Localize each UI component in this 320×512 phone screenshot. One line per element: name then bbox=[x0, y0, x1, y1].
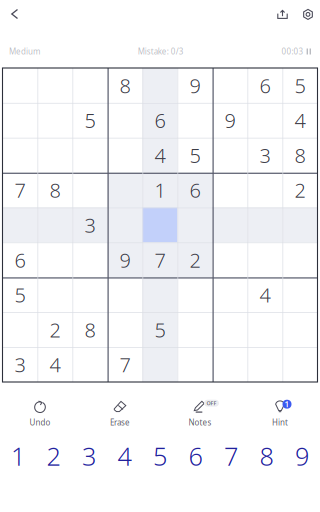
staticText: 5 bbox=[153, 439, 167, 473]
staticText: 1 bbox=[11, 439, 25, 473]
button[interactable]: Share bbox=[270, 0, 295, 28]
button[interactable]: 6 bbox=[178, 441, 213, 471]
staticText: 8 bbox=[294, 142, 305, 168]
staticText: 1 bbox=[284, 399, 289, 409]
button[interactable]: Settings bbox=[295, 0, 320, 28]
staticText: 4 bbox=[49, 351, 60, 378]
button[interactable]: Undo bbox=[0, 397, 80, 431]
staticText: 2 bbox=[189, 247, 200, 273]
staticText: 1 bbox=[154, 177, 165, 203]
button[interactable]: 8 bbox=[249, 441, 284, 471]
staticText: 4 bbox=[294, 107, 305, 134]
button[interactable]: 5 bbox=[142, 441, 178, 471]
staticText: 6 bbox=[14, 247, 25, 273]
button[interactable]: 2 bbox=[36, 441, 71, 471]
button[interactable]: 4 bbox=[107, 441, 142, 471]
staticText: 8 bbox=[119, 72, 130, 99]
button[interactable]: 3 bbox=[71, 441, 107, 471]
staticText: 4 bbox=[154, 142, 165, 168]
staticText: 6 bbox=[189, 177, 200, 203]
staticText: 5 bbox=[294, 72, 305, 99]
staticText: Notes bbox=[188, 417, 211, 428]
button[interactable]: OFF bbox=[160, 397, 240, 431]
staticText: 2 bbox=[294, 177, 305, 203]
staticText: 8 bbox=[49, 177, 60, 203]
staticText: 2 bbox=[49, 316, 60, 343]
staticText: 4 bbox=[259, 281, 270, 308]
staticText: Erase bbox=[110, 417, 130, 428]
staticText: 3 bbox=[14, 351, 25, 378]
staticText: 4 bbox=[117, 439, 131, 473]
staticText: 9 bbox=[224, 107, 235, 134]
staticText: 9 bbox=[295, 439, 309, 473]
button[interactable]: 9 bbox=[284, 441, 320, 471]
staticText: 3 bbox=[84, 212, 95, 238]
staticText: 7 bbox=[119, 351, 130, 378]
button[interactable]: Back bbox=[1, 0, 29, 29]
staticText: 3 bbox=[259, 142, 270, 168]
staticText: 6 bbox=[154, 107, 165, 134]
staticText: 2 bbox=[46, 439, 60, 473]
staticText: 5 bbox=[154, 316, 165, 343]
staticText: 00:03 bbox=[282, 46, 304, 57]
staticText: Hint bbox=[272, 417, 288, 428]
staticText: 7 bbox=[224, 439, 238, 473]
staticText: 8 bbox=[259, 439, 273, 473]
staticText: OFF bbox=[206, 400, 216, 407]
staticText: 5 bbox=[84, 107, 95, 134]
staticText: Medium bbox=[9, 46, 40, 57]
staticText: 5 bbox=[189, 142, 200, 168]
staticText: 9 bbox=[189, 72, 200, 99]
button[interactable]: 1 bbox=[240, 397, 320, 431]
staticText: Undo bbox=[29, 417, 50, 428]
staticText: 3 bbox=[82, 439, 96, 473]
staticText: 6 bbox=[259, 72, 270, 99]
staticText: Mistake: 0/3 bbox=[138, 46, 184, 57]
button[interactable]: 1 bbox=[0, 441, 36, 471]
button[interactable]: 7 bbox=[213, 441, 249, 471]
staticText: 9 bbox=[119, 247, 130, 273]
staticText: 8 bbox=[84, 316, 95, 343]
staticText: 5 bbox=[14, 281, 25, 308]
staticText: 6 bbox=[188, 439, 202, 473]
staticText: 7 bbox=[14, 177, 25, 203]
button[interactable]: Erase bbox=[80, 397, 160, 431]
staticText: 7 bbox=[154, 247, 165, 273]
